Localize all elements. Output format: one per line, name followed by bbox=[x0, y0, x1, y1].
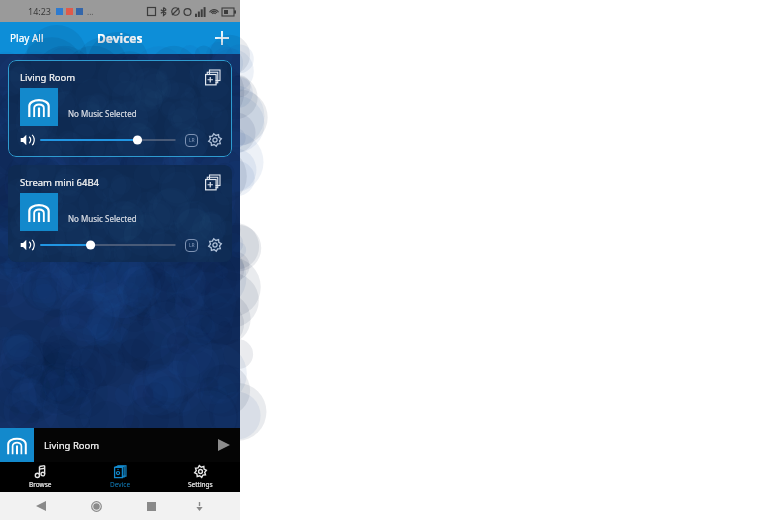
button[interactable]: Back bbox=[30, 495, 52, 517]
staticText: No Music Selected bbox=[68, 213, 137, 224]
button[interactable]: Play All bbox=[0, 25, 54, 51]
button[interactable]: Device bbox=[80, 462, 160, 492]
button[interactable]: Left Right channel bbox=[183, 132, 200, 149]
staticText: Living Room bbox=[20, 71, 76, 84]
staticText: Stream mini 64B4 bbox=[20, 176, 100, 189]
button[interactable]: Album art bbox=[20, 88, 58, 126]
button[interactable] bbox=[41, 132, 175, 148]
button[interactable]: Hide bbox=[189, 496, 210, 517]
button[interactable]: Living Room bbox=[0, 428, 240, 462]
staticText: LR bbox=[189, 137, 195, 144]
staticText: Device bbox=[110, 480, 131, 489]
button[interactable]: Add device bbox=[204, 25, 240, 51]
button[interactable] bbox=[41, 237, 175, 253]
button[interactable]: Left Right channel bbox=[183, 237, 200, 254]
staticText: ... bbox=[87, 6, 94, 17]
staticText: 14:23 bbox=[28, 5, 52, 17]
button[interactable]: Album art bbox=[20, 193, 58, 231]
staticText: Living Room bbox=[44, 439, 208, 452]
button[interactable]: Add to group bbox=[199, 64, 226, 91]
button[interactable]: Device settings bbox=[206, 236, 224, 254]
button[interactable]: Settings bbox=[160, 462, 240, 492]
button[interactable]: Home bbox=[85, 495, 108, 518]
staticText: Play All bbox=[10, 31, 44, 45]
button[interactable]: Device settings bbox=[206, 131, 224, 149]
button[interactable]: Recents bbox=[141, 496, 162, 517]
other: Volume bbox=[20, 133, 34, 147]
staticText: Settings bbox=[188, 480, 213, 489]
staticText: LR bbox=[189, 242, 195, 249]
button[interactable]: Stream mini 64B4 bbox=[8, 165, 232, 262]
button[interactable]: Play bbox=[208, 431, 240, 459]
button[interactable]: Browse bbox=[0, 462, 80, 492]
staticText: Devices bbox=[97, 30, 143, 46]
button[interactable]: Living Room bbox=[8, 60, 232, 157]
staticText: No Music Selected bbox=[68, 108, 137, 119]
staticText: Browse bbox=[29, 480, 52, 489]
button[interactable]: Add to group bbox=[199, 169, 226, 196]
other: Volume bbox=[20, 238, 34, 252]
